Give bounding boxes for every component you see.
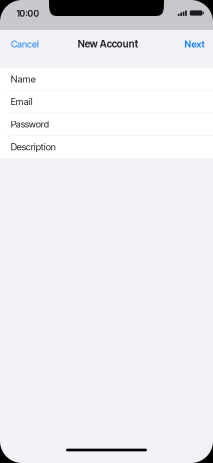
button[interactable]: Cancel	[0, 34, 45, 54]
staticText: Password	[11, 118, 49, 130]
button[interactable]: Password	[0, 113, 213, 136]
staticText: 10:00	[16, 8, 39, 19]
staticText: Next	[184, 38, 204, 50]
button[interactable]: Description	[0, 136, 213, 158]
staticText: Email	[11, 96, 33, 107]
button[interactable]: Email	[0, 90, 213, 113]
staticText: Description	[11, 141, 56, 153]
button[interactable]: Name	[0, 68, 213, 91]
staticText: Name	[11, 73, 36, 85]
staticText: Cancel	[11, 38, 39, 50]
staticText: New Account	[78, 38, 138, 50]
button[interactable]: Next	[178, 34, 213, 54]
